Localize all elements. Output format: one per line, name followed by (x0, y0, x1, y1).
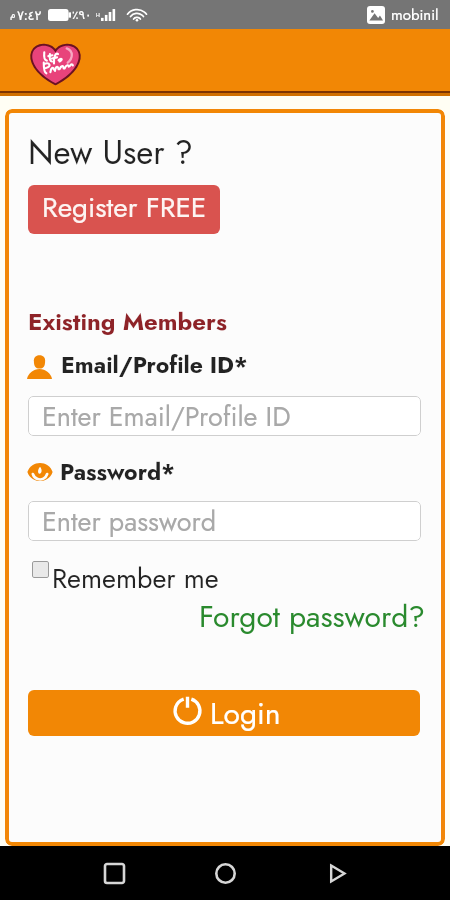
staticText: ٧:٤٢ (17, 6, 42, 24)
staticText: mobinil (391, 4, 439, 26)
button[interactable]: Home (203, 851, 247, 895)
staticText: ᴴ (96, 10, 100, 21)
button[interactable]: Enter Email/Profile ID (28, 396, 421, 436)
staticText: Remember me (52, 559, 219, 593)
staticText: Existing Members (28, 304, 227, 339)
staticText: ٪٩٠ (72, 8, 92, 22)
staticText: Login (210, 692, 281, 735)
button[interactable]: Enter password (28, 501, 421, 541)
staticText: م (10, 10, 16, 20)
staticText: Enter password (42, 502, 217, 541)
staticText: Register FREE (42, 187, 207, 227)
staticText: Enter Email/Profile ID (42, 397, 291, 436)
staticText: New User ? (28, 129, 193, 177)
button[interactable]: Register FREE (28, 185, 220, 234)
staticText: Password* (60, 455, 175, 488)
button[interactable]: Remember me (28, 552, 228, 586)
button[interactable]: Login (28, 690, 420, 736)
staticText: Email/Profile ID* (61, 348, 248, 381)
button[interactable]: Recent apps (92, 851, 136, 895)
button[interactable]: Back (314, 851, 358, 895)
button[interactable]: Forgot password? (199, 595, 425, 638)
